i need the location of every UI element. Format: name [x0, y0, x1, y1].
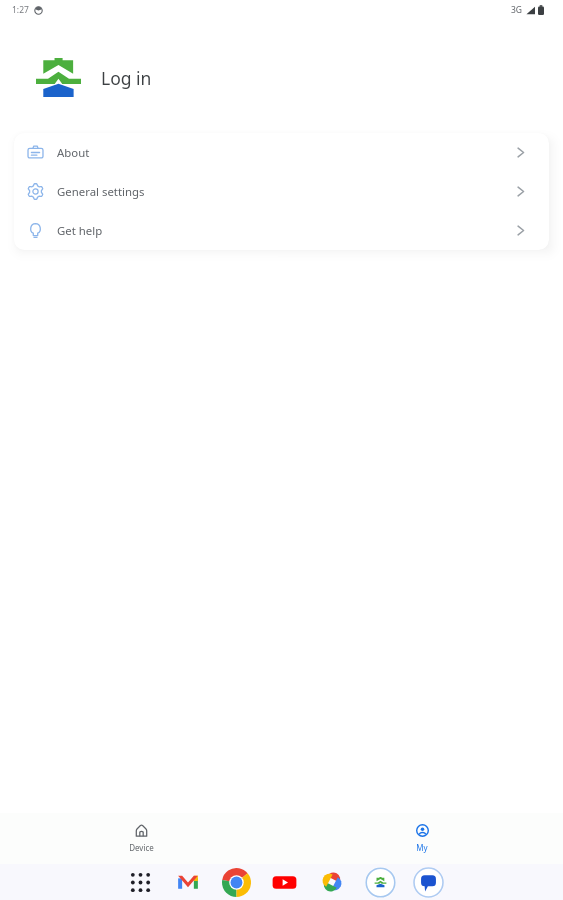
button[interactable]: Get help	[14, 211, 549, 250]
button[interactable]: Device	[110, 824, 172, 853]
button[interactable]: Chrome	[212, 864, 260, 900]
button[interactable]: Gmail	[164, 864, 212, 900]
button[interactable]: My	[391, 824, 453, 853]
button[interactable]: Photos	[308, 864, 356, 900]
button[interactable]: App	[356, 864, 404, 900]
staticText: Get help	[57, 223, 103, 239]
staticText: Device	[129, 842, 154, 853]
button[interactable]: YouTube	[260, 864, 308, 900]
staticText: My	[416, 842, 428, 853]
staticText: About	[57, 145, 90, 161]
staticText: 3G	[511, 4, 523, 16]
button[interactable]: Apps	[116, 864, 164, 900]
staticText: General settings	[57, 184, 145, 200]
button[interactable]: General settings	[14, 172, 549, 211]
staticText: 1:27	[12, 4, 29, 16]
button[interactable]: Messages	[404, 864, 452, 900]
button[interactable]: About	[14, 133, 549, 172]
button[interactable]: Log in	[0, 58, 563, 97]
staticText: Log in	[101, 66, 152, 90]
